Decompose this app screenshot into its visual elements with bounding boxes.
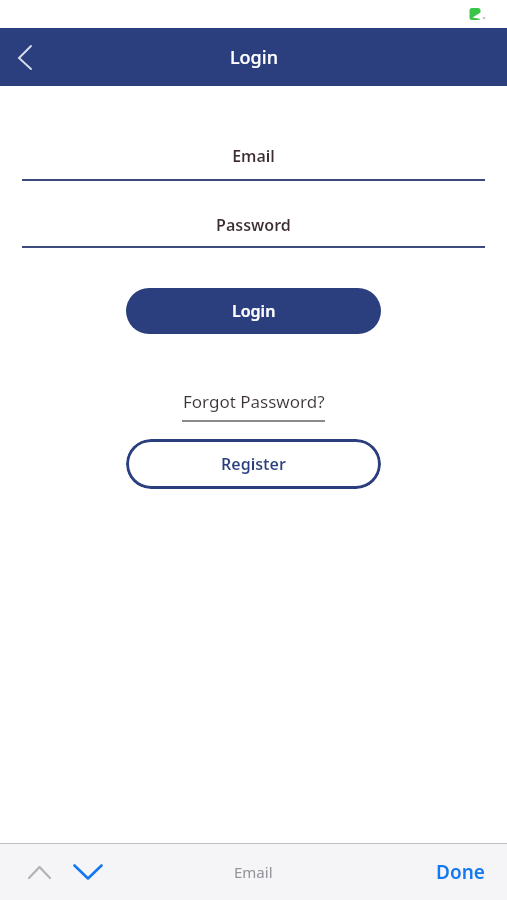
staticText: Login xyxy=(230,45,278,70)
staticText: Done xyxy=(436,859,485,885)
staticText: Email xyxy=(234,862,273,882)
staticText: Register xyxy=(221,453,286,475)
button[interactable] xyxy=(73,857,103,887)
staticText: Password xyxy=(0,214,507,236)
button[interactable]: Register xyxy=(126,439,381,489)
button[interactable] xyxy=(24,857,54,887)
button[interactable]: Forgot Password? xyxy=(182,390,325,422)
staticText: Email xyxy=(0,145,507,167)
staticText: Login xyxy=(232,300,276,322)
button[interactable]: Done xyxy=(436,859,485,885)
button[interactable] xyxy=(8,41,40,73)
button[interactable]: Login xyxy=(126,288,381,334)
staticText: Forgot Password? xyxy=(183,390,325,413)
